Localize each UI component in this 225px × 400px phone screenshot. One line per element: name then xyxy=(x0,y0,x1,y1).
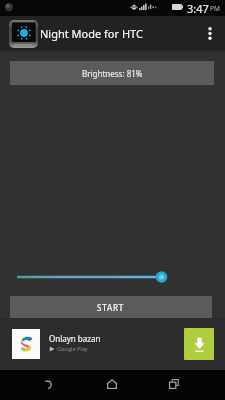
staticText: Brightness: 81% xyxy=(82,68,143,79)
staticText: PM xyxy=(210,4,220,13)
button[interactable]: Back xyxy=(28,370,68,400)
button[interactable] xyxy=(0,268,225,286)
staticText: Night Mode for HTC xyxy=(40,26,143,41)
staticText: Google Play xyxy=(57,345,88,352)
button[interactable]: Install xyxy=(184,328,214,360)
staticText: 3:47 xyxy=(187,1,209,16)
button[interactable]: Home xyxy=(92,370,132,400)
staticText: START xyxy=(97,302,125,313)
button[interactable]: START xyxy=(10,296,212,318)
button[interactable]: More options xyxy=(195,16,225,50)
staticText: Onlayn bazan xyxy=(49,333,101,344)
button[interactable]: Brightness: 81% xyxy=(10,61,214,85)
button[interactable]: Recents xyxy=(154,370,194,400)
